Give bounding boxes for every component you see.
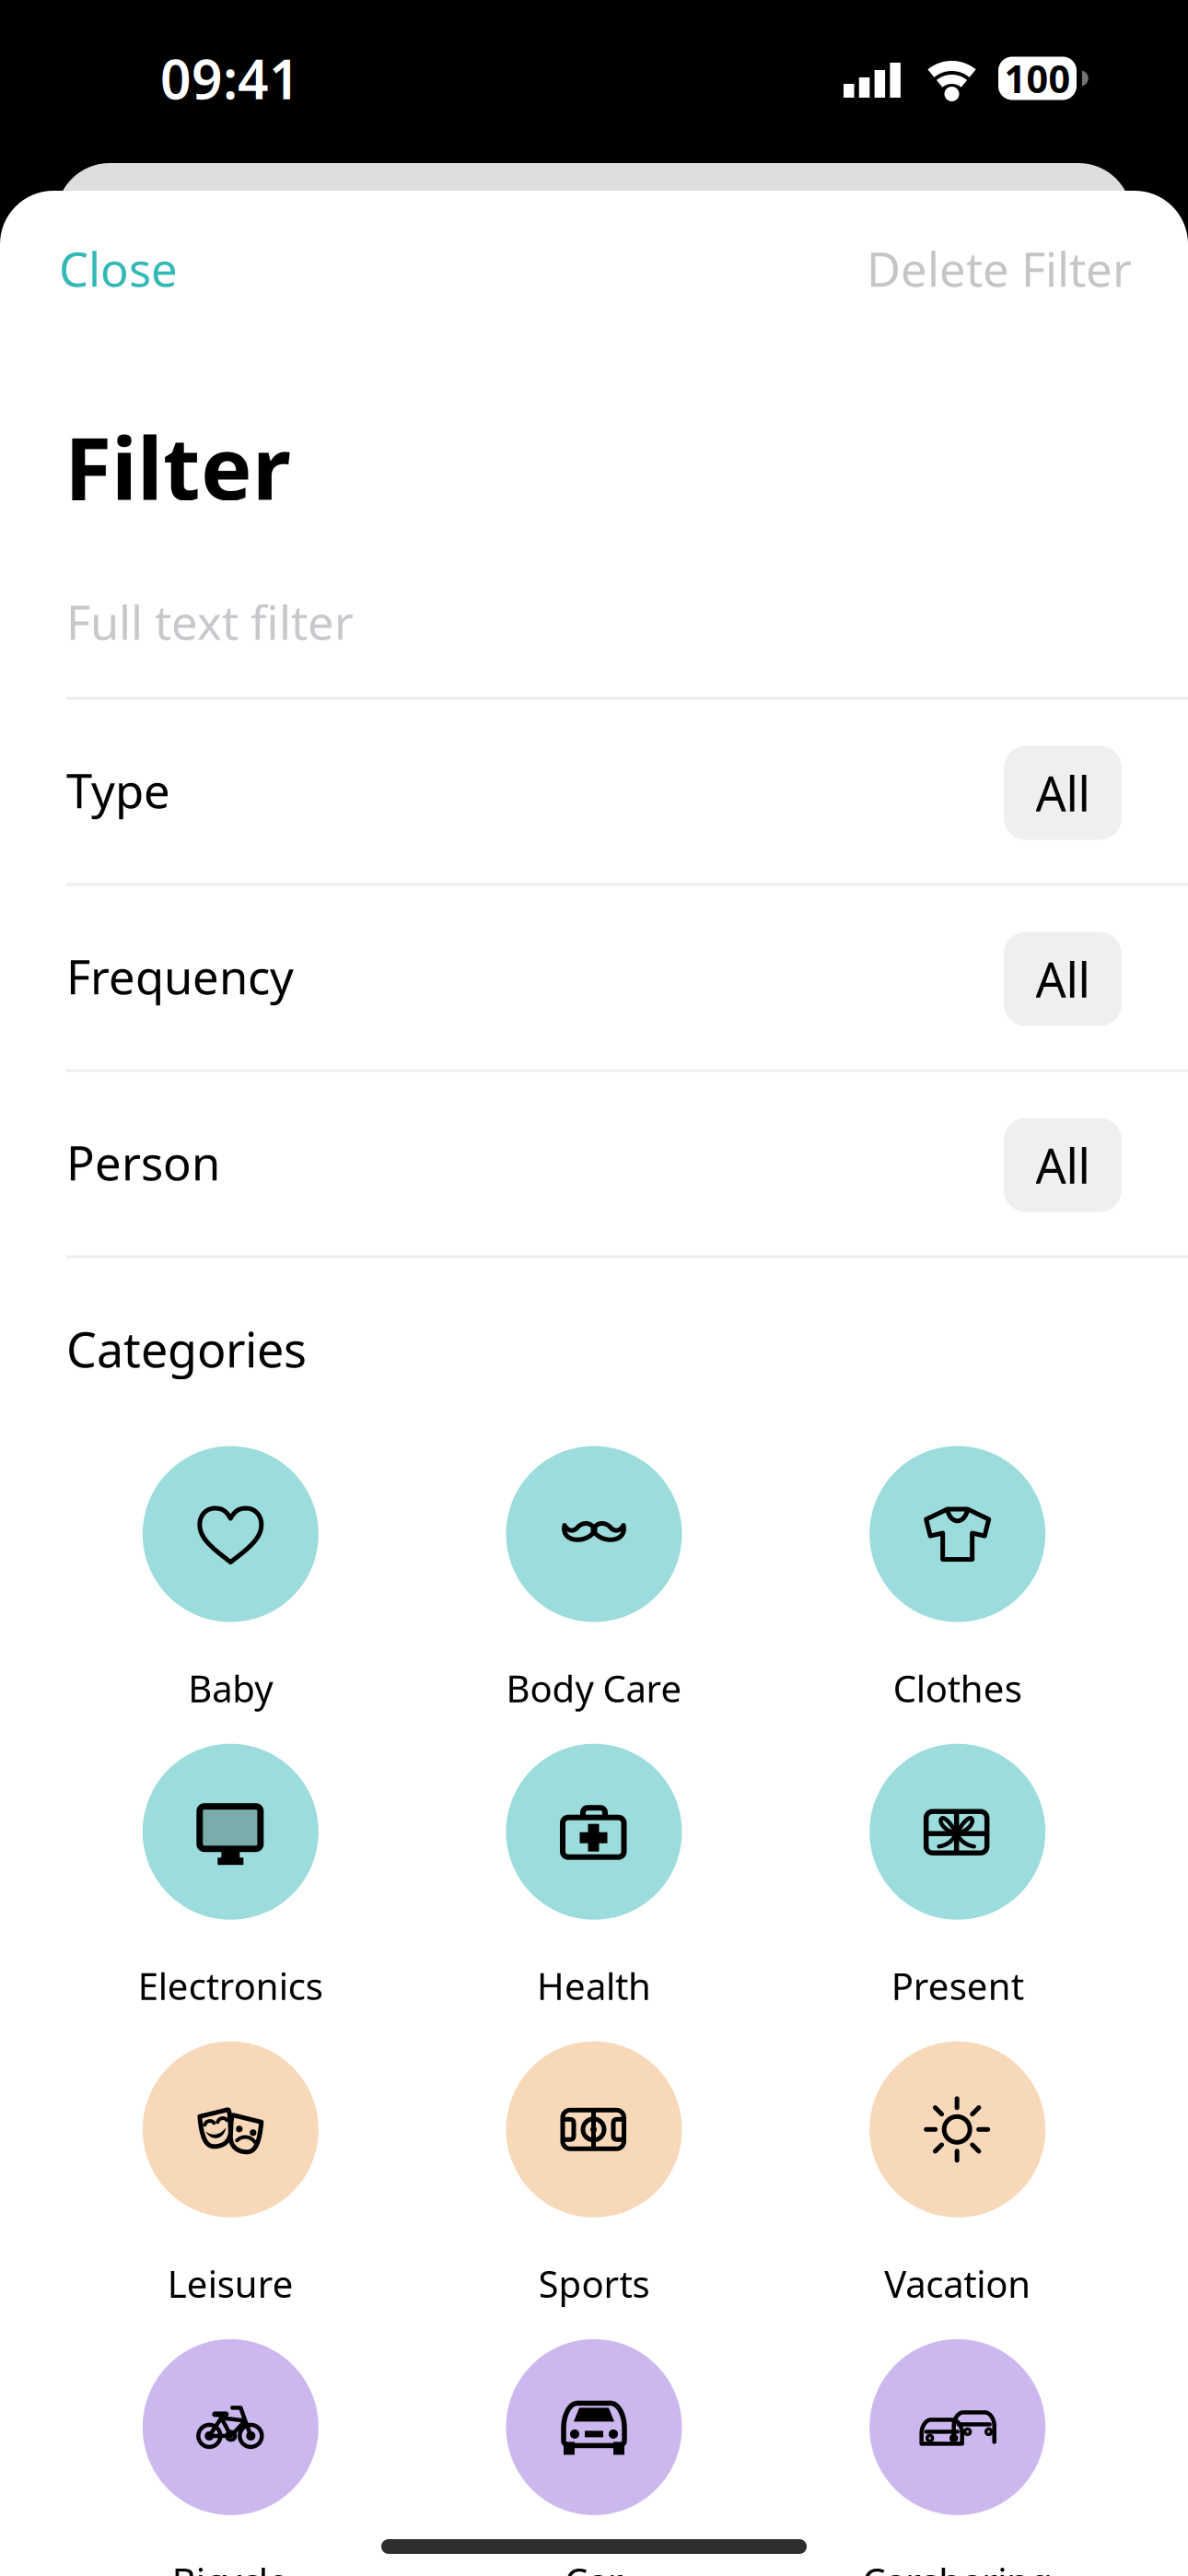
staticText: All: [1036, 761, 1090, 825]
button[interactable]: Bicycle: [49, 2339, 412, 2576]
button[interactable]: Carsharing: [776, 2339, 1139, 2576]
staticText: 100: [1004, 53, 1071, 104]
staticText: Carsharing: [862, 2557, 1053, 2576]
staticText: Present: [891, 1961, 1024, 2010]
staticText: Bicycle: [172, 2557, 289, 2576]
button[interactable]: Vacation: [776, 2041, 1139, 2308]
button[interactable]: Body Care: [412, 1446, 776, 1712]
staticText: Person: [66, 1131, 220, 1193]
staticText: Body Care: [506, 1664, 682, 1712]
staticText: Close: [59, 238, 178, 300]
button[interactable]: Clothes: [776, 1446, 1139, 1712]
staticText: Sports: [538, 2259, 650, 2308]
staticText: Baby: [188, 1664, 273, 1712]
staticText: Type: [66, 759, 170, 821]
button[interactable]: Frequency: [0, 886, 1188, 1072]
staticText: Full text filter: [66, 591, 354, 653]
button[interactable]: Present: [776, 1744, 1139, 2010]
staticText: Categories: [66, 1317, 307, 1381]
staticText: 09:41: [160, 42, 300, 114]
button[interactable]: Delete Filter: [867, 238, 1132, 300]
staticText: Health: [537, 1961, 651, 2010]
button[interactable]: Sports: [412, 2041, 776, 2308]
staticText: Electronics: [138, 1961, 323, 2010]
staticText: All: [1036, 947, 1090, 1011]
staticText: Frequency: [66, 945, 294, 1007]
staticText: Delete Filter: [867, 238, 1132, 300]
button[interactable]: Person: [0, 1072, 1188, 1258]
button[interactable]: Electronics: [49, 1744, 412, 2010]
staticText: Filter: [64, 409, 291, 523]
button[interactable]: Car: [412, 2339, 776, 2576]
staticText: Clothes: [893, 1664, 1022, 1712]
button[interactable]: Health: [412, 1744, 776, 2010]
staticText: All: [1036, 1133, 1090, 1197]
button[interactable]: Leisure: [49, 2041, 412, 2308]
button[interactable]: Close: [59, 238, 178, 300]
button[interactable]: Type: [0, 700, 1188, 886]
staticText: Car: [565, 2557, 623, 2576]
staticText: Leisure: [167, 2259, 294, 2308]
staticText: Vacation: [884, 2259, 1031, 2308]
button[interactable]: Baby: [49, 1446, 412, 1712]
